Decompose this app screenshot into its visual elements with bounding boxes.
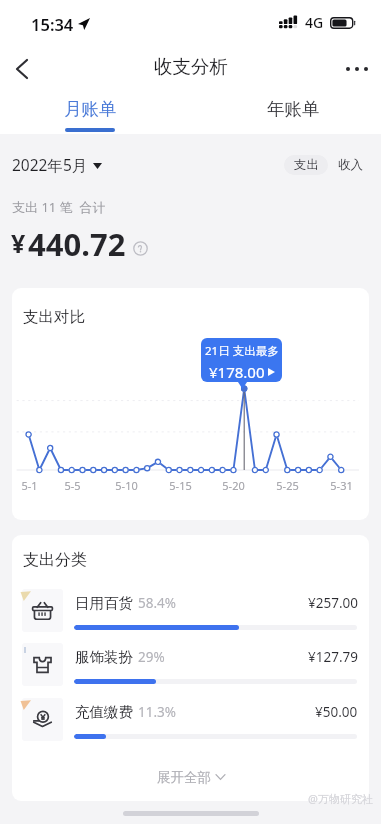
staticText: 5-25	[276, 478, 299, 493]
staticText: 15:34	[31, 13, 74, 35]
staticText: ¥50.00	[315, 703, 358, 721]
button[interactable]: 月账单	[0, 92, 180, 134]
staticText: 支出对比	[23, 307, 85, 327]
button[interactable]: 收入	[328, 155, 372, 175]
button[interactable]: 充值缴费	[12, 695, 369, 745]
staticText: 支出	[294, 157, 319, 173]
button[interactable]: More options	[337, 49, 377, 89]
staticText: 29%	[138, 648, 165, 666]
staticText: 4G	[305, 13, 324, 32]
staticText: 收支分析	[154, 55, 228, 78]
staticText: 5-1	[21, 478, 38, 493]
staticText: 充值缴费	[75, 703, 133, 721]
staticText: 2022年5月	[12, 154, 88, 175]
staticText: ¥257.00	[308, 594, 358, 612]
staticText: 11.3%	[138, 703, 177, 721]
staticText: 支出 11 笔 合计	[12, 198, 106, 216]
button[interactable]: Back	[2, 49, 42, 89]
staticText: 年账单	[267, 98, 320, 120]
button[interactable]: 2022年5月	[12, 152, 102, 177]
staticText: 21日 支出最多	[205, 343, 279, 359]
staticText: 日用百货	[75, 594, 133, 612]
staticText: 5-31	[330, 478, 353, 493]
staticText: 58.4%	[138, 594, 177, 612]
staticText: ¥127.79	[308, 648, 358, 666]
staticText: ¥	[11, 226, 26, 260]
staticText: 5-15	[169, 478, 192, 493]
staticText: ¥178.00	[209, 362, 265, 382]
staticText: 展开全部	[157, 769, 211, 786]
staticText: 5-10	[115, 478, 138, 493]
staticText: @万物研究社	[308, 791, 373, 806]
button[interactable]: 服饰装扮	[12, 640, 369, 690]
button[interactable]: 年账单	[203, 92, 381, 134]
button[interactable]: 支出	[284, 155, 328, 175]
staticText: 5-5	[64, 478, 81, 493]
staticText: 收入	[338, 157, 363, 173]
button[interactable]: 展开全部	[12, 753, 369, 801]
staticText: 服饰装扮	[75, 648, 133, 666]
staticText: 440.72	[28, 223, 126, 265]
staticText: 5-20	[222, 478, 245, 493]
staticText: 支出分类	[23, 550, 87, 570]
staticText: 月账单	[64, 98, 117, 120]
button[interactable]: 日用百货	[12, 586, 369, 636]
